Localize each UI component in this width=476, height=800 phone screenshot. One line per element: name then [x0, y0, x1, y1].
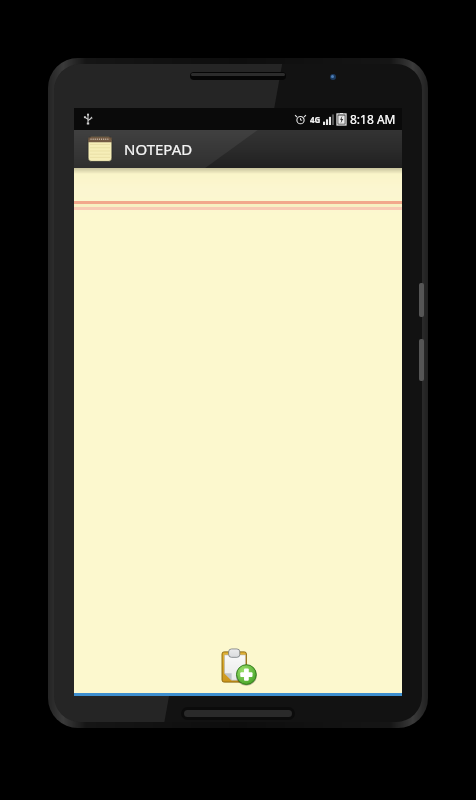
button[interactable]: NOTEPAD [74, 130, 402, 168]
staticText: NOTEPAD [124, 139, 193, 159]
button[interactable]: Add note [215, 644, 261, 690]
button[interactable]: Add note [74, 168, 402, 696]
staticText: 8:18 AM [350, 111, 396, 127]
staticText: 4G [310, 114, 321, 125]
